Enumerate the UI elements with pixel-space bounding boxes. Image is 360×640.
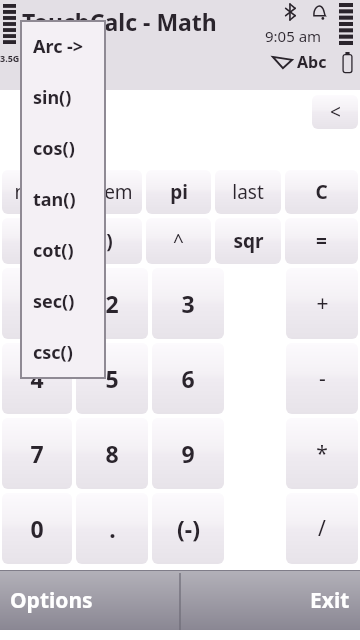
button[interactable]: 2 xyxy=(76,268,148,339)
staticText: 3.5G xyxy=(0,52,20,64)
staticText: Exit xyxy=(310,586,350,615)
staticText: 1 xyxy=(30,288,44,319)
staticText: 0 xyxy=(30,513,44,544)
button[interactable]: cos() xyxy=(21,123,105,174)
staticText: . xyxy=(109,513,116,544)
button[interactable]: sqr xyxy=(215,218,281,264)
button[interactable]: 5 xyxy=(76,343,148,414)
button[interactable]: - xyxy=(286,343,358,414)
staticText: cos() xyxy=(33,136,75,161)
button[interactable]: 0 xyxy=(2,493,72,564)
staticText: 6 xyxy=(181,363,195,394)
staticText: 3 xyxy=(181,288,195,319)
staticText: = xyxy=(316,228,327,254)
button[interactable]: . xyxy=(76,493,148,564)
staticText: 9:05 am xyxy=(265,26,322,46)
button[interactable]: 8 xyxy=(76,418,148,489)
staticText: Options xyxy=(10,586,93,615)
staticText: TouchCalc - Math xyxy=(22,6,217,37)
button[interactable]: C xyxy=(285,170,358,214)
staticText: * xyxy=(316,439,328,468)
button[interactable]: pi xyxy=(146,170,211,214)
button[interactable]: cot() xyxy=(21,225,105,276)
staticText: pi xyxy=(170,179,188,205)
staticText: - xyxy=(319,364,326,393)
staticText: last xyxy=(232,179,264,205)
button[interactable]: ) xyxy=(76,218,142,264)
staticText: sec() xyxy=(33,289,75,314)
staticText: tan() xyxy=(33,187,76,212)
staticText: 4 xyxy=(30,363,44,394)
button[interactable]: 6 xyxy=(152,343,224,414)
button[interactable]: Backspace xyxy=(312,95,358,129)
staticText: cot() xyxy=(33,238,74,263)
staticText: mem xyxy=(14,179,61,205)
button[interactable]: sec() xyxy=(21,276,105,327)
staticText: / xyxy=(318,514,326,543)
button[interactable]: mem xyxy=(76,170,142,214)
button[interactable]: 4 xyxy=(2,343,72,414)
staticText: 9 xyxy=(181,438,195,469)
button[interactable]: / xyxy=(286,493,358,564)
button[interactable]: tan() xyxy=(21,174,105,225)
staticText: Arc -> xyxy=(33,34,84,59)
button[interactable]: sin() xyxy=(21,72,105,123)
staticText: < xyxy=(330,99,341,125)
button[interactable]: ( xyxy=(2,218,72,264)
staticText: sqr xyxy=(233,228,264,254)
button[interactable]: 9 xyxy=(152,418,224,489)
staticText: sin() xyxy=(33,85,72,110)
button[interactable]: 7 xyxy=(2,418,72,489)
staticText: Abc xyxy=(297,51,327,73)
staticText: 7 xyxy=(30,438,44,469)
button[interactable]: * xyxy=(286,418,358,489)
staticText: mem xyxy=(86,179,133,205)
button[interactable]: 1 xyxy=(2,268,72,339)
staticText: ) xyxy=(106,228,113,254)
staticText: C xyxy=(315,179,328,205)
button[interactable]: Options xyxy=(0,570,180,630)
button[interactable]: (-) xyxy=(152,493,224,564)
staticText: 5 xyxy=(105,363,119,394)
button[interactable]: Arc -> xyxy=(21,21,105,72)
staticText: ( xyxy=(34,228,41,254)
button[interactable]: csc() xyxy=(21,327,105,378)
staticText: 2 xyxy=(105,288,119,319)
button[interactable]: last xyxy=(215,170,281,214)
staticText: csc() xyxy=(33,340,73,365)
button[interactable]: + xyxy=(286,268,358,339)
staticText: ^ xyxy=(173,228,184,254)
button[interactable]: mem xyxy=(2,170,72,214)
staticText: (-) xyxy=(177,513,200,544)
button[interactable]: Exit xyxy=(180,570,360,630)
button[interactable]: = xyxy=(285,218,358,264)
button[interactable]: ^ xyxy=(146,218,211,264)
staticText: + xyxy=(316,289,329,318)
button[interactable]: 3 xyxy=(152,268,224,339)
staticText: 8 xyxy=(105,438,119,469)
